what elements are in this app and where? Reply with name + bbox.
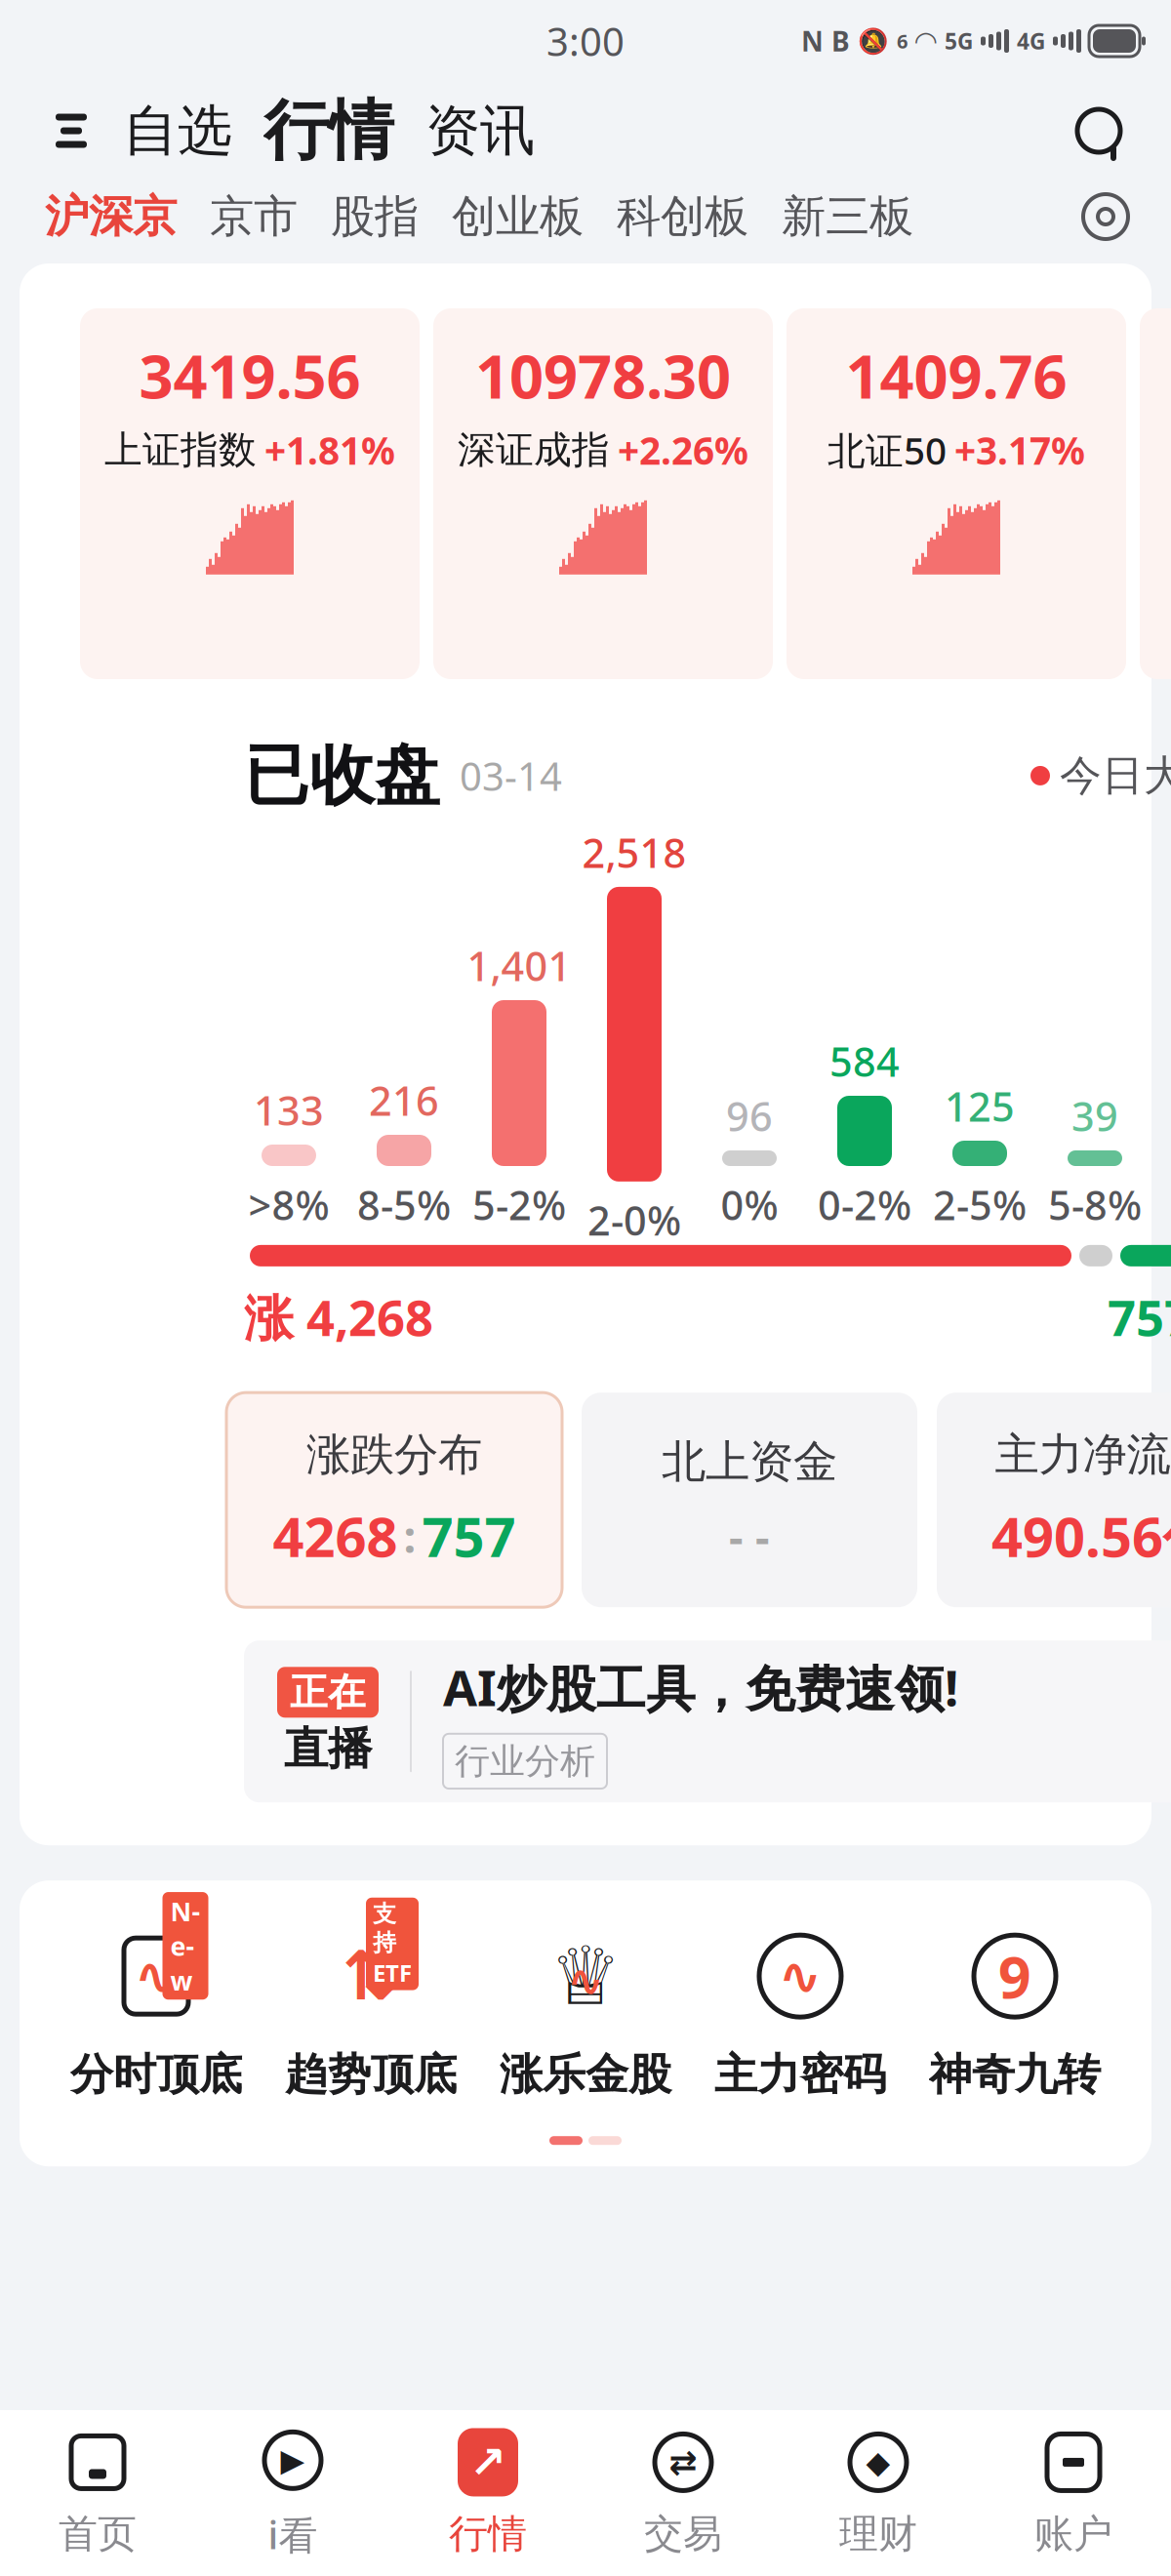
staticText: 正在 (290, 1669, 366, 1715)
button[interactable]: ◆ (781, 2420, 976, 2566)
button[interactable]: ⇅ (263, 1925, 478, 2101)
button[interactable]: 科创板 (603, 182, 762, 251)
staticText: 深证成指 (458, 427, 610, 473)
staticText: ◠ (915, 25, 937, 56)
staticText: >8% (248, 1178, 329, 1231)
staticText: ◆ (866, 2445, 890, 2480)
staticText: 757 跌 (1108, 1284, 1171, 1350)
staticText: ↗ (469, 2437, 506, 2487)
staticText: 支持ETF (373, 1900, 412, 1988)
staticText: 490.56亿 (991, 1500, 1171, 1572)
button[interactable]: 今日大盘 (1030, 738, 1171, 814)
button[interactable]: 账户 (976, 2420, 1171, 2566)
button[interactable]: 设置 (1071, 182, 1140, 251)
staticText: ∿ (567, 1956, 604, 2006)
staticText: 涨跌分布 (306, 1428, 482, 1482)
staticText: ∿ (778, 1947, 822, 2006)
staticText: 账户 (1034, 2510, 1112, 2558)
button[interactable]: 3419.56 (80, 308, 420, 679)
button[interactable]: 创业板 (438, 182, 597, 251)
staticText: 资讯 (425, 97, 535, 164)
staticText: 涨乐金股 (500, 2048, 671, 2101)
button[interactable]: ♕ (478, 1925, 693, 2101)
button[interactable]: 股指 (317, 182, 432, 251)
staticText: +3.17% (954, 425, 1085, 475)
staticText: 39 (1071, 1089, 1118, 1143)
button[interactable]: 主力净流入 (937, 1393, 1171, 1607)
staticText: 科创板 (617, 189, 748, 244)
staticText: 行情 (449, 2510, 527, 2558)
button[interactable]: 9 (908, 1925, 1122, 2101)
staticText: 上证指数 (104, 427, 257, 473)
staticText: 1409.76 (846, 336, 1067, 415)
button[interactable]: 行情 (248, 91, 410, 171)
staticText: 行情 (263, 91, 394, 171)
button[interactable]: 菜单 (35, 95, 107, 167)
button[interactable]: 正在 (244, 1640, 1171, 1802)
button[interactable]: 10978.30 (433, 308, 773, 679)
staticText: New (170, 1894, 201, 1998)
staticText: 主力净流入 (995, 1428, 1171, 1482)
staticText: 03-14 (440, 750, 562, 802)
button[interactable]: 沪深京 (31, 182, 190, 251)
staticText: 神奇九转 (929, 2048, 1101, 2101)
staticText: 125 (945, 1079, 1015, 1133)
button[interactable]: ↗ (390, 2420, 585, 2566)
staticText: 趋势顶底 (285, 2048, 457, 2101)
staticText: 2-5% (933, 1178, 1027, 1231)
staticText: 主力密码 (714, 2048, 886, 2101)
staticText: +2.26% (618, 425, 748, 475)
staticText: 3:00 (546, 15, 625, 67)
staticText: 北证50 (828, 425, 947, 475)
staticText: ∿ (134, 1947, 178, 2006)
button[interactable]: 北上资金 (582, 1393, 917, 1607)
staticText: 216 (369, 1073, 439, 1127)
button[interactable]: 1409.76 (787, 308, 1126, 679)
staticText: 9 (998, 1938, 1031, 2014)
staticText: 2,518 (582, 825, 686, 879)
staticText: 133 (254, 1083, 324, 1137)
staticText: 8-5% (357, 1178, 451, 1231)
button[interactable]: 搜索 (1062, 94, 1136, 168)
staticText: N (801, 23, 824, 59)
staticText: +1.81% (264, 425, 395, 475)
staticText: 5G (945, 26, 973, 56)
staticText: 沪深京 (45, 189, 177, 244)
button[interactable]: ⇄ (585, 2420, 781, 2566)
button[interactable]: 自选 (107, 97, 248, 164)
staticText: 5-8% (1048, 1178, 1142, 1231)
button[interactable]: ∿ (49, 1925, 263, 2101)
staticText: 分时顶底 (70, 2048, 242, 2101)
staticText: 10978.30 (475, 336, 731, 415)
staticText: 涨 4,268 (244, 1284, 433, 1350)
staticText: 交易 (644, 2510, 722, 2558)
staticText: 584 (829, 1034, 900, 1088)
staticText: 自选 (123, 97, 232, 164)
button[interactable]: 新三板 (768, 182, 927, 251)
staticText: - - (729, 1506, 770, 1565)
staticText: 4268 (273, 1500, 398, 1572)
staticText: ⇅ (343, 1938, 399, 2014)
button[interactable]: ∿ (693, 1925, 908, 2101)
staticText: 行业分析 (455, 1740, 595, 1783)
button[interactable]: ▶ (195, 2420, 390, 2566)
staticText: 1,401 (467, 939, 571, 992)
staticText: 新三板 (782, 189, 913, 244)
staticText: 今日大盘 (1060, 750, 1171, 801)
staticText: 5-2% (472, 1178, 566, 1231)
staticText: 3419.56 (139, 336, 361, 415)
staticText: ⇄ (669, 2443, 697, 2481)
button[interactable]: 资讯 (410, 97, 550, 164)
staticText: AI炒股工具，免费速领! (443, 1654, 958, 1720)
staticText: ▶ (281, 2443, 305, 2478)
staticText: 直播 (284, 1722, 372, 1776)
staticText: 96 (726, 1089, 773, 1143)
button[interactable]: 涨跌分布 (226, 1393, 562, 1607)
staticText: ♕ (549, 1930, 622, 2022)
staticText: B (831, 23, 850, 59)
button[interactable]: 首页 (0, 2420, 195, 2566)
staticText: 0% (721, 1178, 778, 1231)
staticText: i看 (268, 2508, 318, 2560)
button[interactable]: 京市 (196, 182, 311, 251)
